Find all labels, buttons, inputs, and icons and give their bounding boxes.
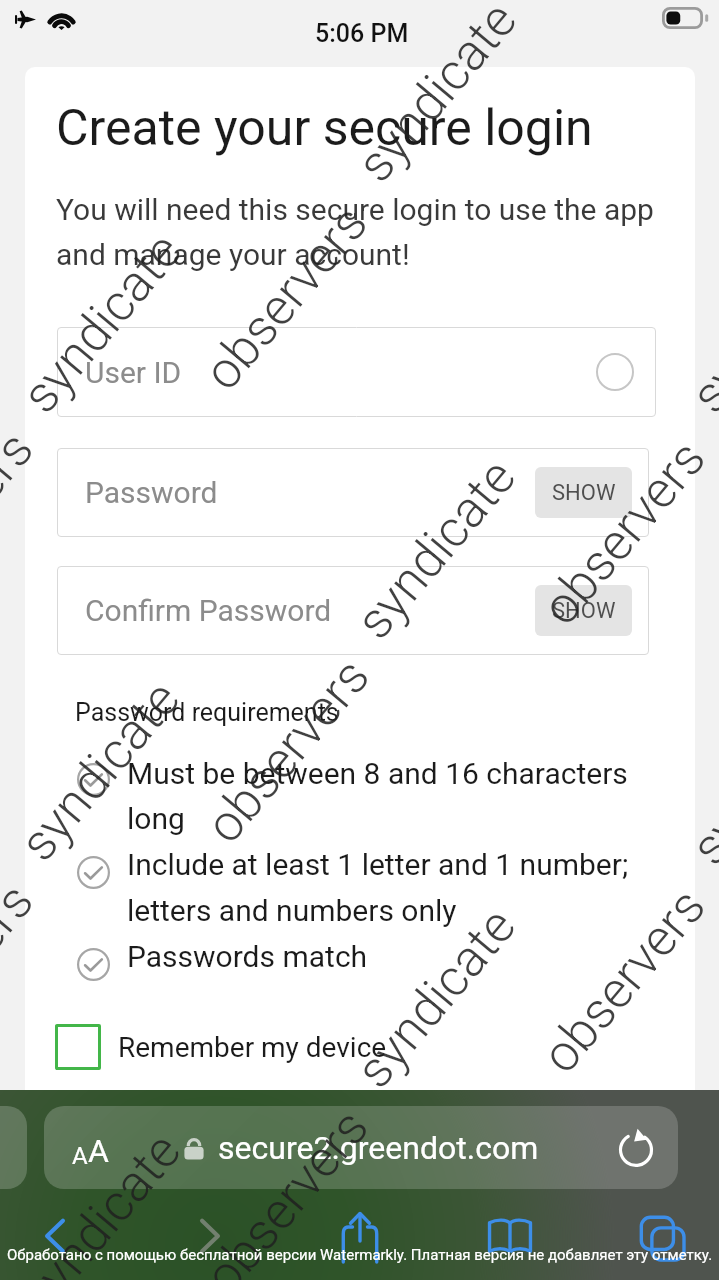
staticText: SHOW [552, 480, 616, 506]
button[interactable]: Tabs [640, 1216, 684, 1260]
button[interactable]: Forward [192, 1216, 228, 1256]
staticText: A [88, 1132, 109, 1170]
button[interactable]: Confirm Password [57, 566, 649, 655]
staticText: observers [193, 1098, 381, 1280]
staticText: You will need this secure login to use t… [56, 192, 681, 273]
staticText: syndicate [679, 221, 719, 425]
button[interactable]: A [44, 1106, 678, 1189]
staticText: syndicate [10, 221, 194, 425]
button[interactable]: Remember my device [55, 1024, 387, 1070]
staticText: syndicate [679, 673, 719, 877]
staticText: 5:06 PM [315, 19, 409, 48]
button[interactable]: SHOW [535, 585, 632, 636]
staticText: observers [530, 877, 718, 1085]
staticText: Create your secure login [56, 99, 593, 158]
staticText: syndicate [9, 1121, 193, 1280]
staticText: observers [0, 420, 46, 628]
staticText: A [72, 1142, 88, 1170]
button[interactable]: SHOW [535, 467, 632, 518]
staticText: SHOW [552, 598, 616, 624]
staticText: observers [194, 647, 382, 855]
staticText: Confirm Password [85, 593, 332, 628]
button[interactable]: Reload [617, 1129, 655, 1167]
staticText: observers [530, 429, 718, 637]
button[interactable]: User ID [57, 327, 656, 417]
staticText: Remember my device [118, 1031, 387, 1064]
button[interactable]: Share [338, 1212, 382, 1262]
button[interactable] [0, 1106, 27, 1189]
staticText: Обработано с помощью бесплатной версии W… [7, 1246, 713, 1264]
staticText: Must be between 8 and 16 characters long… [127, 756, 687, 975]
staticText: syndicate [345, 0, 529, 194]
staticText: User ID [85, 355, 182, 390]
staticText: observers [0, 872, 46, 1080]
staticText: Password [85, 475, 218, 510]
staticText: secure2.greendot.com [218, 1129, 539, 1167]
staticText: syndicate [344, 447, 528, 651]
staticText: syndicate [344, 896, 528, 1100]
staticText: observers [192, 194, 380, 402]
staticText: Password requirements [75, 698, 339, 727]
staticText: syndicate [8, 669, 192, 873]
button[interactable]: Password [57, 448, 649, 537]
button[interactable]: Back [37, 1216, 73, 1256]
button[interactable]: Help [596, 353, 634, 391]
button[interactable]: Bookmarks [487, 1219, 533, 1253]
